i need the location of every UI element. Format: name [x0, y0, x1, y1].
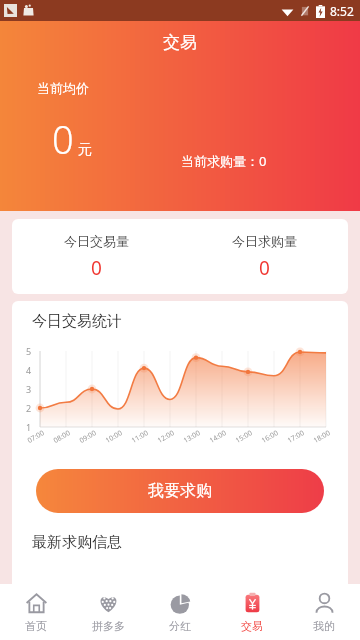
- button[interactable]: 我要求购: [36, 469, 324, 513]
- button[interactable]: 分红: [144, 584, 216, 640]
- button[interactable]: 首页: [0, 584, 72, 640]
- staticText: 11:00: [130, 428, 150, 446]
- staticText: 首页: [25, 619, 47, 633]
- staticText: 2: [26, 402, 32, 414]
- staticText: 14:00: [208, 428, 228, 446]
- staticText: 今日交易量: [64, 233, 129, 249]
- button[interactable]: 今日求购量: [180, 219, 348, 294]
- staticText: 当前求购量：0: [181, 152, 267, 170]
- staticText: 1: [26, 421, 32, 433]
- staticText: 0: [91, 255, 102, 281]
- staticText: 09:00: [78, 428, 98, 446]
- button[interactable]: 今日交易量: [12, 219, 180, 294]
- staticText: 0: [259, 255, 270, 281]
- staticText: 交易: [241, 619, 263, 633]
- staticText: 4: [26, 364, 32, 376]
- staticText: 12:00: [156, 428, 176, 446]
- staticText: 分红: [169, 619, 191, 633]
- staticText: 今日交易统计: [32, 312, 122, 331]
- staticText: 3: [26, 383, 32, 395]
- staticText: 我的: [313, 619, 335, 633]
- staticText: 5: [26, 345, 32, 357]
- staticText: 拼多多: [92, 619, 125, 633]
- staticText: 18:00: [312, 428, 332, 446]
- staticText: 13:00: [182, 428, 202, 446]
- staticText: 0: [52, 113, 74, 165]
- button[interactable]: 交易: [216, 584, 288, 640]
- button[interactable]: 拼多多: [72, 584, 144, 640]
- staticText: 10:00: [104, 428, 124, 446]
- staticText: 08:00: [52, 428, 72, 446]
- staticText: 元: [78, 141, 92, 159]
- staticText: 今日求购量: [232, 233, 297, 249]
- staticText: 最新求购信息: [32, 533, 122, 552]
- staticText: 8:52: [330, 3, 354, 19]
- staticText: 15:00: [234, 428, 254, 446]
- staticText: 我要求购: [148, 481, 212, 501]
- button[interactable]: 我的: [288, 584, 360, 640]
- staticText: 07:00: [26, 428, 46, 446]
- staticText: 交易: [163, 32, 197, 53]
- staticText: 16:00: [260, 428, 280, 446]
- staticText: 当前均价: [37, 80, 89, 96]
- staticText: 17:00: [286, 428, 306, 446]
